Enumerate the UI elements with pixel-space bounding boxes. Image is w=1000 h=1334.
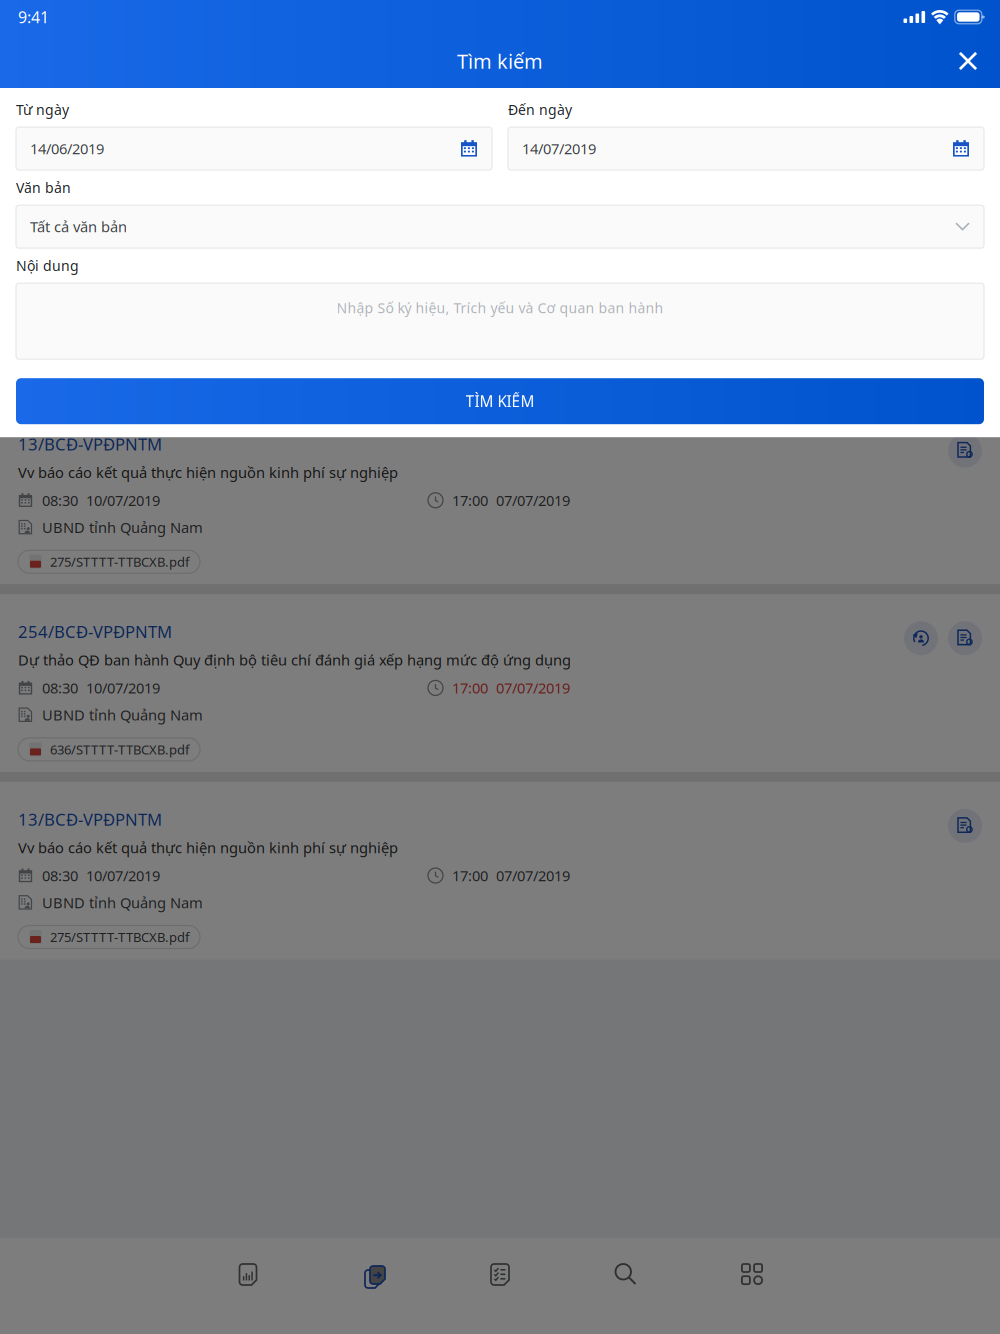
staticText: Nghị định này sửa đổi, bổ sung một số đi… bbox=[18, 275, 718, 295]
staticText: 17:00 07/07/2019 bbox=[452, 490, 570, 510]
button[interactable]: Reassign document bbox=[904, 621, 938, 655]
staticText: 08:30 10/07/2019 bbox=[42, 678, 160, 698]
button[interactable]: 14/06/2019 bbox=[16, 127, 492, 170]
staticText: UBND tỉnh Quảng Nam bbox=[42, 892, 203, 912]
staticText: 636/STTTT-TTBCXB.pdf bbox=[50, 740, 189, 758]
staticText: Văn bản bbox=[16, 178, 71, 197]
staticText: 275/STTTT-TTBCXB.pdf bbox=[50, 553, 189, 571]
button[interactable]: More bbox=[689, 1238, 815, 1334]
button[interactable]: Outgoing documents bbox=[311, 1238, 437, 1334]
staticText: Vv báo cáo kết quả thực hiện nguồn kinh … bbox=[18, 462, 398, 482]
staticText: Từ ngày bbox=[16, 100, 69, 119]
button[interactable]: Document details bbox=[948, 809, 982, 843]
staticText: 13/BCĐ-VPĐPNTM bbox=[18, 433, 162, 455]
staticText: 14/06/2019 bbox=[30, 139, 104, 159]
button[interactable]: Document details bbox=[948, 621, 982, 655]
staticText: UBND tỉnh Quảng Nam bbox=[42, 517, 203, 537]
staticText: 17:00 07/07/2019 bbox=[452, 865, 570, 885]
button[interactable]: Tasks bbox=[437, 1238, 563, 1334]
staticText: Đến ngày bbox=[508, 100, 572, 119]
button[interactable]: Statistics bbox=[185, 1238, 311, 1334]
button[interactable]: 13/BCĐ-VPĐPNTM bbox=[0, 407, 1000, 584]
button[interactable]: Document details bbox=[948, 246, 982, 280]
button[interactable]: Search bbox=[563, 1238, 689, 1334]
button[interactable]: Close bbox=[944, 37, 992, 85]
staticText: 17:00 07/07/2019 bbox=[452, 303, 570, 323]
staticText: Dự thảo QĐ ban hành Quy định bộ tiêu chí… bbox=[18, 650, 571, 670]
button[interactable]: 13/BCĐ-VPĐPNTM bbox=[0, 782, 1000, 959]
staticText: 6 file đính kèm bbox=[51, 365, 141, 383]
staticText: 08:30 10/07/2019 bbox=[42, 865, 160, 885]
staticText: Tất cả văn bản bbox=[30, 217, 127, 237]
staticText: 4544/UBND-KSTTHC bbox=[18, 245, 178, 268]
button[interactable]: Document details bbox=[948, 434, 982, 468]
staticText: 08:30 10/07/2019 bbox=[42, 490, 160, 510]
button[interactable]: Reassign document bbox=[904, 246, 938, 280]
staticText: 636/STTTT-TTBCXB.pdf bbox=[50, 178, 189, 195]
staticText: TÌM KIẾM bbox=[465, 391, 534, 412]
button[interactable]: Tất cả văn bản bbox=[16, 205, 984, 248]
staticText: 275/STTTT-TTBCXB.pdf bbox=[50, 928, 189, 946]
staticText: 13/BCĐ-VPĐPNTM bbox=[18, 808, 162, 831]
button[interactable]: 14/07/2019 bbox=[508, 127, 984, 170]
staticText: Nhập Số ký hiệu, Trích yếu và Cơ quan ba… bbox=[336, 298, 663, 317]
staticText: 9:41 bbox=[18, 6, 49, 28]
staticText: UBND tỉnh Quảng Nam bbox=[42, 705, 203, 725]
staticText: 17:00 07/07/2019 bbox=[452, 678, 570, 698]
staticText: Tìm kiếm bbox=[457, 47, 543, 75]
staticText: UBND tỉnh Quảng Nam bbox=[42, 142, 203, 162]
staticText: 254/BCĐ-VPĐPNTM bbox=[18, 620, 172, 643]
button[interactable]: 254/BCĐ-VPĐPNTM bbox=[0, 594, 1000, 772]
button[interactable]: 4544/UBND-KSTTHC bbox=[0, 219, 1000, 397]
staticText: 14/07/2019 bbox=[522, 139, 596, 159]
button[interactable]: TÌM KIẾM bbox=[16, 378, 984, 424]
staticText: Vv báo cáo kết quả thực hiện nguồn kinh … bbox=[18, 838, 398, 858]
staticText: Nội dung bbox=[16, 256, 79, 275]
